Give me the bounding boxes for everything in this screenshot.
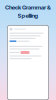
staticText: Check Grammar & [5, 4, 51, 11]
staticText: Spelling [17, 12, 38, 19]
